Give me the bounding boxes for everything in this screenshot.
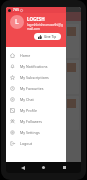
button[interactable]: My Favourites <box>6 83 66 94</box>
staticText: 7:55 <box>13 8 19 12</box>
staticText: My Followers <box>20 119 43 124</box>
button[interactable]: Home <box>6 50 66 61</box>
button[interactable]: My Notifications <box>6 61 66 72</box>
staticText: My Subscriptions <box>20 75 49 80</box>
staticText: My Settings <box>20 130 40 135</box>
staticText: Logout <box>20 141 32 146</box>
button[interactable]: Give Tip <box>34 33 61 40</box>
staticText: Give Tip <box>44 35 57 39</box>
staticText: My Profile <box>20 108 37 113</box>
staticText: L <box>15 17 19 27</box>
button[interactable]: Home <box>39 163 48 172</box>
button[interactable]: Back <box>18 163 27 172</box>
button[interactable]: My Followers <box>6 116 66 127</box>
button[interactable]: My Chat <box>6 94 66 105</box>
button[interactable]: Logout <box>6 138 66 149</box>
button[interactable]: My Subscriptions <box>6 72 66 83</box>
staticText: My Favourites <box>20 86 44 91</box>
staticText: LOGESH <box>27 16 45 22</box>
staticText: logeshkrishnamoorthi@gmail.com <box>27 23 63 31</box>
staticText: My Notifications <box>20 64 48 69</box>
staticText: My Chat <box>20 97 34 102</box>
button[interactable]: My Profile <box>6 105 66 116</box>
staticText: Home <box>20 53 31 58</box>
button[interactable]: Recent apps <box>60 163 69 172</box>
button[interactable]: L <box>10 15 24 29</box>
button[interactable]: My Settings <box>6 127 66 138</box>
